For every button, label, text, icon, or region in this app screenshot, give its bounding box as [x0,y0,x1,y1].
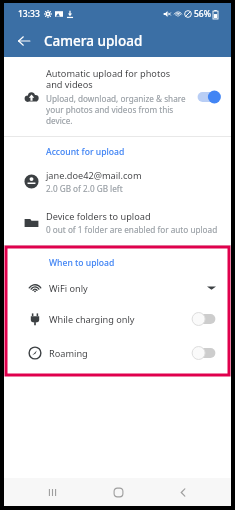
staticText: Camera upload [44,32,143,50]
staticText: WiFi only [49,282,207,295]
staticText: jane.doe42@mail.com [46,169,142,182]
staticText: 2.0 GB of 2.0 GB left [46,183,123,194]
button[interactable]: Device folders to upload [4,202,231,245]
button[interactable]: Back [12,29,36,53]
button[interactable]: Off [192,310,218,328]
button[interactable]: While charging only [7,302,228,336]
button[interactable]: jane.doe42@mail.com [4,163,231,202]
staticText: 13:33 [18,8,40,20]
button[interactable]: WiFi only [7,274,228,302]
button[interactable]: Back [165,478,201,506]
button[interactable]: On [195,88,221,106]
button[interactable]: Home [100,478,136,506]
staticText: While charging only [49,313,192,326]
staticText: 0 out of 1 folder are enabled for auto u… [46,224,218,235]
button[interactable]: Automatic upload for photos and videos [4,57,231,136]
staticText: Account for upload [46,146,125,158]
button[interactable]: Recents [34,478,70,506]
staticText: 56% [194,8,211,20]
staticText: Device folders to upload [46,210,151,223]
staticText: When to upload [49,257,115,269]
staticText: Upload, download, organize & share your … [46,93,189,126]
button[interactable]: Off [192,344,218,362]
staticText: Roaming [49,347,192,360]
staticText: Automatic upload for photos and videos [46,67,189,91]
button[interactable]: Roaming [7,336,228,370]
